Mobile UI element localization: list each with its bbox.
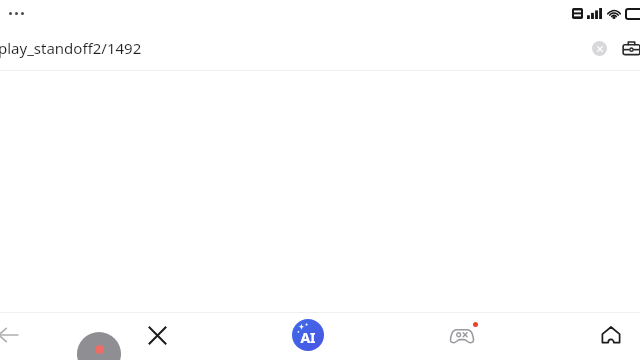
staticText: play_standoff2/1492	[0, 38, 142, 58]
button[interactable]: Close tab	[136, 314, 178, 356]
button[interactable]: AI assistant	[292, 319, 324, 351]
button[interactable]: Home	[590, 314, 632, 356]
button[interactable]: Assistive touch	[77, 332, 121, 360]
button[interactable]: Back	[0, 313, 30, 357]
staticText: AI	[300, 328, 316, 347]
button[interactable]: Close	[584, 33, 614, 63]
button[interactable]: Games	[440, 313, 484, 357]
button[interactable]: Toolbox	[616, 33, 640, 63]
button[interactable]: More options	[9, 12, 24, 15]
